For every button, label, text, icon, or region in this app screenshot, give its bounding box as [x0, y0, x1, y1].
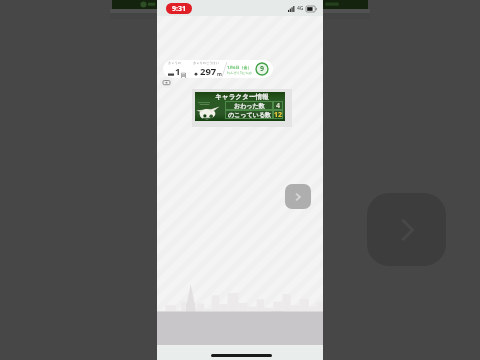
staticText: 4 — [276, 101, 281, 110]
staticText: れんぞく1にちめ — [227, 71, 252, 75]
staticText: 12 — [274, 110, 283, 119]
staticText: 9:31 — [172, 4, 186, 14]
staticText: キャラクター情報 — [215, 93, 269, 101]
button[interactable]: Next — [285, 184, 311, 209]
staticText: のこっている数 — [228, 111, 271, 119]
staticText: きょうの — [168, 61, 182, 65]
staticText: 1 — [175, 65, 181, 78]
staticText: 回 — [181, 72, 186, 78]
staticText: 4G — [297, 5, 304, 12]
button[interactable]: Camera — [160, 77, 173, 88]
staticText: m — [217, 71, 222, 78]
staticText: 1月6日（金） — [227, 65, 252, 70]
staticText: おわった数 — [234, 102, 265, 110]
button[interactable]: きょうの — [163, 60, 273, 78]
staticText: きょりのごうけい — [193, 61, 220, 65]
staticText: 297 — [200, 65, 217, 78]
staticText: 9 — [260, 64, 265, 74]
